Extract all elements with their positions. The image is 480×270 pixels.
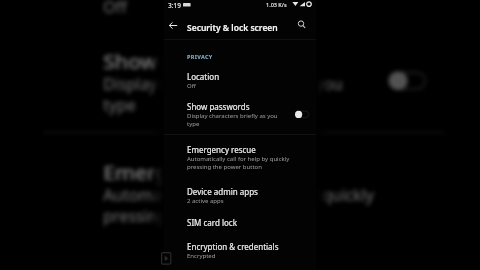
staticText: Automatically call for help by quickly p… — [187, 155, 290, 171]
staticText: Encrypted — [187, 252, 216, 260]
staticText: Off — [103, 0, 127, 18]
staticText: Display characters briefly as you type — [103, 74, 344, 116]
staticText: Device admin apps — [187, 186, 258, 197]
button[interactable]: Show passwords — [164, 97, 316, 127]
staticText: Location — [187, 71, 220, 82]
button[interactable]: Show passwords — [42, 36, 444, 113]
staticText: PRIVACY — [187, 53, 213, 60]
button[interactable]: Emergency rescue — [164, 140, 316, 170]
staticText: Emergency rescue — [187, 144, 256, 155]
button[interactable]: Location — [42, 0, 444, 10]
button[interactable]: Search — [296, 19, 309, 32]
staticText: Show passwords — [187, 101, 250, 112]
staticText: Off — [187, 82, 196, 90]
staticText: Emergency rescue — [103, 157, 288, 185]
button[interactable]: Encryption & credentials — [164, 237, 316, 261]
staticText: Show passwords — [103, 46, 272, 75]
staticText: 2 active apps — [187, 197, 224, 205]
staticText: Encryption & credentials — [187, 241, 279, 252]
staticText: Security & lock screen — [187, 22, 278, 34]
button[interactable]: Device admin apps — [164, 182, 316, 206]
button[interactable]: Emergency rescue — [42, 147, 444, 224]
staticText: 1.03 K/s — [266, 1, 287, 8]
button[interactable]: SIM card lock — [164, 213, 316, 231]
button[interactable]: Device admin apps — [42, 255, 444, 270]
staticText: 3:19 — [168, 1, 181, 10]
button[interactable]: Back — [167, 19, 180, 32]
staticText: Display characters briefly as you type — [187, 112, 278, 128]
button[interactable]: Location — [164, 67, 316, 87]
staticText: SIM card lock — [187, 217, 237, 228]
staticText: Automatically call for help by quickly p… — [103, 185, 375, 227]
